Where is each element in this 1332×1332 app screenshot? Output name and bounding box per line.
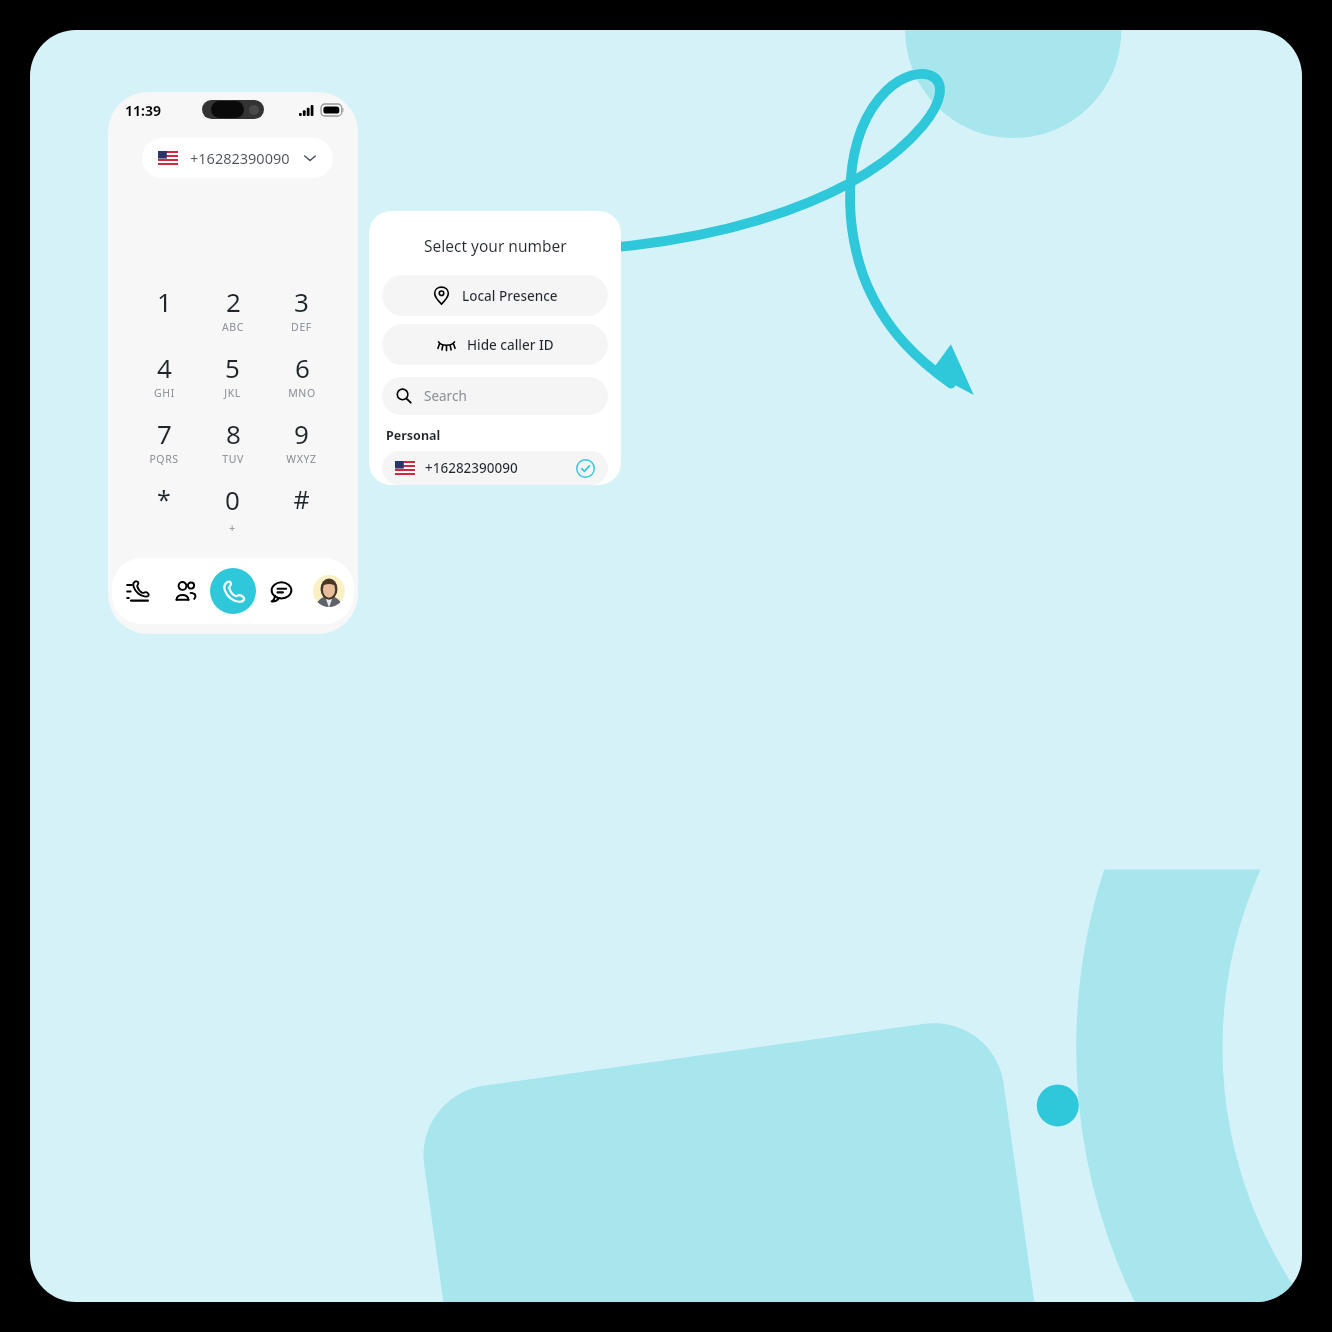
button[interactable]: 4 xyxy=(130,350,198,408)
staticText: WXYZ xyxy=(286,452,317,466)
staticText: 8 xyxy=(226,416,241,451)
staticText: ABC xyxy=(222,320,244,334)
button[interactable]: +16282390090 xyxy=(382,451,608,485)
staticText: 4 xyxy=(157,350,172,385)
button[interactable]: Local Presence xyxy=(382,275,608,316)
staticText: DEF xyxy=(291,320,312,334)
button[interactable]: Search xyxy=(382,377,608,415)
button[interactable]: Messages xyxy=(258,568,304,614)
button[interactable]: 3 xyxy=(267,284,336,342)
button[interactable]: 5 xyxy=(198,350,267,408)
staticText: TUV xyxy=(222,452,244,466)
staticText: 6 xyxy=(295,350,310,385)
staticText: * xyxy=(157,482,171,516)
staticText: Select your number xyxy=(424,235,567,256)
button[interactable]: 7 xyxy=(130,416,198,474)
button[interactable]: 2 xyxy=(198,284,267,342)
button[interactable]: Profile xyxy=(306,568,352,614)
staticText: PQRS xyxy=(149,452,179,466)
button[interactable]: +16282390090 xyxy=(142,138,333,178)
button[interactable]: 9 xyxy=(267,416,336,474)
button[interactable]: Contacts xyxy=(162,568,208,614)
staticText: 3 xyxy=(294,284,309,319)
button[interactable]: 8 xyxy=(198,416,267,474)
staticText: Search xyxy=(424,387,467,405)
staticText: 7 xyxy=(157,416,172,451)
staticText: 2 xyxy=(226,284,241,319)
staticText: +16282390090 xyxy=(190,148,290,168)
staticText: +16282390090 xyxy=(425,459,518,477)
staticText: Hide caller ID xyxy=(467,336,554,354)
button[interactable]: 0 xyxy=(198,482,267,540)
staticText: + xyxy=(229,520,236,535)
staticText: # xyxy=(293,482,310,516)
staticText: 1 xyxy=(157,284,172,319)
staticText: 11:39 xyxy=(125,101,161,120)
button[interactable]: * xyxy=(130,482,198,540)
button[interactable]: 1 xyxy=(130,284,198,342)
staticText: Local Presence xyxy=(462,287,558,305)
button[interactable]: Hide caller ID xyxy=(382,324,608,365)
staticText: Personal xyxy=(386,427,441,444)
staticText: MNO xyxy=(288,386,316,400)
staticText: GHI xyxy=(154,386,175,400)
staticText: JKL xyxy=(224,386,241,400)
button[interactable]: Call history xyxy=(114,568,160,614)
button[interactable]: 6 xyxy=(267,350,336,408)
staticText: 5 xyxy=(225,350,240,385)
staticText: 0 xyxy=(225,482,240,517)
staticText: 9 xyxy=(294,416,309,451)
button[interactable]: # xyxy=(267,482,336,540)
button[interactable]: Call xyxy=(210,568,256,614)
